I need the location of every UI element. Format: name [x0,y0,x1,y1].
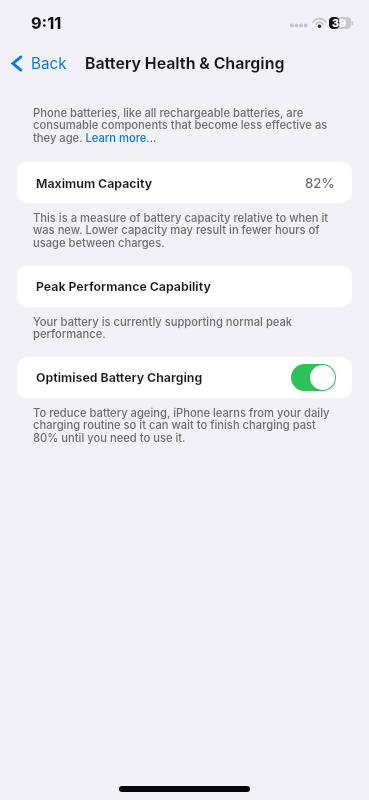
staticText: 39 [332,16,347,29]
staticText: This is a measure of battery capacity re… [33,211,338,250]
button[interactable]: Optimised Battery Charging toggle [291,364,336,391]
staticText: To reduce battery ageing, iPhone learns … [33,406,338,445]
staticText: Optimised Battery Charging [36,370,203,385]
button[interactable]: Peak Performance Capability [17,266,352,307]
staticText: Your battery is currently supporting nor… [33,315,338,341]
button[interactable]: Optimised Battery Charging [17,357,352,398]
staticText: 82% [305,175,335,191]
staticText: Maximum Capacity [36,176,153,191]
staticText: Back [31,54,67,72]
staticText: Peak Performance Capability [36,279,211,294]
staticText: 9:11 [31,13,62,32]
staticText: Battery Health & Charging [85,54,285,73]
staticText: Phone batteries, like all rechargeable b… [33,106,338,145]
button[interactable]: Back [0,48,77,78]
button[interactable]: Maximum Capacity [17,162,352,203]
